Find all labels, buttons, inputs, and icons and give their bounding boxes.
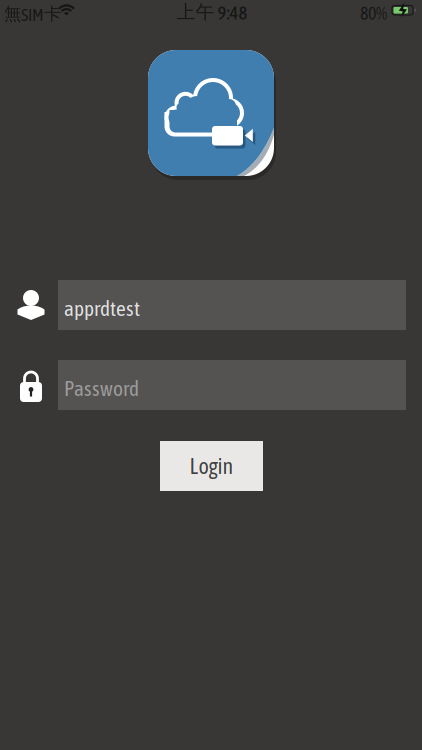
button[interactable]: Password <box>58 360 406 410</box>
staticText: 上午 9:48 <box>176 0 247 24</box>
button[interactable]: Login <box>160 441 263 491</box>
button[interactable]: Username, apprdtest <box>58 280 406 330</box>
staticText: 無SIM卡 <box>4 3 61 25</box>
staticText: 80% <box>360 3 387 24</box>
staticText: Password <box>64 376 139 400</box>
staticText: apprdtest <box>64 296 140 320</box>
staticText: Login <box>189 453 233 479</box>
